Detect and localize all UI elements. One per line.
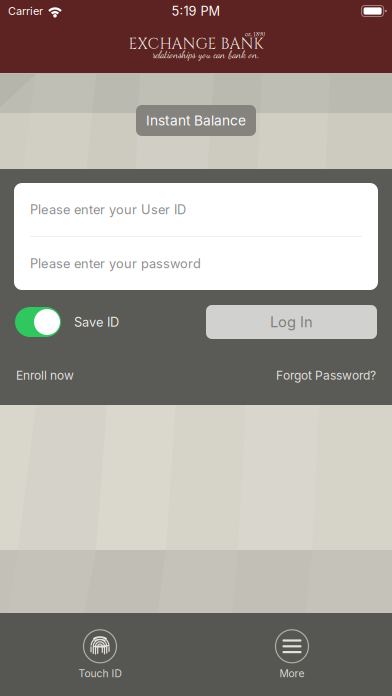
staticText: Carrier [8,4,43,18]
button[interactable]: Instant Balance [136,105,256,136]
button[interactable]: Please enter your password [14,237,378,290]
button[interactable]: Forgot Password? [276,368,376,382]
staticText: Log In [270,313,313,331]
staticText: Instant Balance [146,112,246,129]
staticText: 5:19 PM [171,3,220,19]
staticText: EXCHANGE BANK [128,34,263,54]
staticText: Save ID [74,314,119,330]
button[interactable]: Enroll now [16,368,74,382]
staticText: Please enter your password [30,256,201,271]
staticText: More [279,667,304,680]
button[interactable]: Log In [206,305,377,339]
staticText: Enroll now [16,368,74,382]
staticText: relationships you can bank on. [152,49,259,61]
button[interactable]: Touch ID [50,624,150,684]
staticText: Touch ID [78,667,121,680]
button[interactable]: More [242,624,342,684]
button[interactable]: Please enter your User ID [14,183,378,236]
staticText: est. 1890 [245,30,265,38]
staticText: Forgot Password? [276,368,376,382]
staticText: Please enter your User ID [30,202,186,217]
button[interactable]: Save ID [15,307,61,337]
